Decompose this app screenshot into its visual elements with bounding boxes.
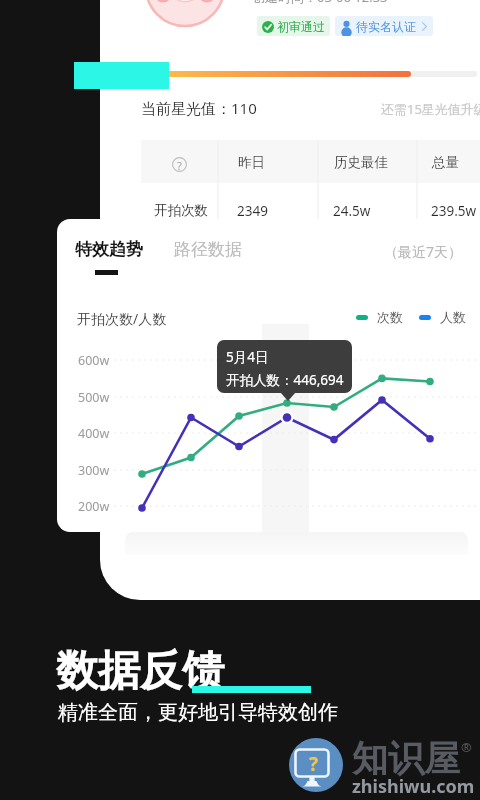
other: zhishiwu.com watermark: [289, 738, 343, 792]
staticText: 数据反馈: [56, 645, 224, 698]
staticText: 历史最佳: [334, 154, 388, 171]
staticText: 500w: [78, 389, 110, 406]
staticText: 昨日: [238, 154, 265, 171]
staticText: 5月4日: [226, 348, 269, 366]
button[interactable]: 路径数据: [174, 239, 242, 260]
staticText: zhishiwu.com: [352, 774, 475, 799]
staticText: 创建时间：03-06 12:33: [252, 0, 388, 6]
staticText: 2349: [237, 202, 268, 220]
button[interactable]: 待实名认证: [340, 16, 427, 36]
staticText: 239.5w: [431, 202, 477, 220]
staticText: ®: [461, 738, 472, 756]
staticText: 开拍次数/人数: [77, 309, 167, 328]
staticText: 300w: [78, 462, 110, 479]
staticText: 还需15星光值升级: [381, 100, 480, 118]
staticText: 人数: [440, 309, 466, 325]
staticText: ?: [177, 158, 182, 173]
staticText: 次数: [377, 309, 403, 325]
button[interactable]: 特效趋势: [75, 239, 143, 260]
staticText: 知识屋: [352, 736, 460, 781]
staticText: 开拍人数：446,694: [226, 371, 344, 389]
staticText: 路径数据: [174, 239, 242, 260]
staticText: ?: [309, 751, 319, 777]
staticText: 待实名认证: [356, 19, 416, 34]
staticText: 总量: [432, 154, 459, 171]
staticText: 初审通过: [277, 19, 325, 34]
staticText: 开拍次数: [154, 202, 208, 219]
staticText: 当前星光值：110: [141, 98, 257, 118]
staticText: 600w: [78, 352, 110, 369]
staticText: 24.5w: [333, 202, 371, 220]
staticText: （最近7天）: [384, 242, 463, 261]
staticText: 特效趋势: [75, 239, 143, 260]
staticText: 精准全面，更好地引导特效创作: [58, 700, 338, 725]
staticText: 200w: [78, 498, 110, 515]
staticText: 400w: [78, 425, 110, 442]
button[interactable]: 次数: [356, 309, 466, 325]
button[interactable]: 初审通过: [262, 16, 325, 36]
